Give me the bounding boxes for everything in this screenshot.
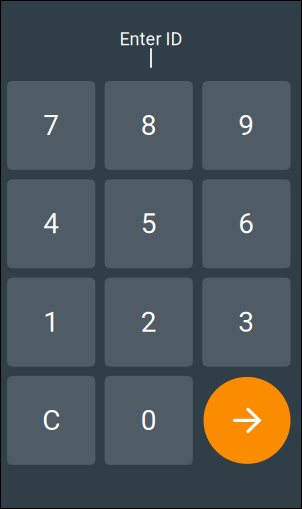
button[interactable]: 7 <box>7 81 95 170</box>
button[interactable]: 0 <box>105 376 193 465</box>
staticText: 7 <box>43 109 59 142</box>
button[interactable]: 1 <box>7 278 95 367</box>
button[interactable]: 5 <box>105 179 193 268</box>
button[interactable]: 6 <box>202 179 290 268</box>
button[interactable]: Submit <box>202 376 290 465</box>
button[interactable]: 4 <box>7 179 95 268</box>
staticText: 8 <box>141 109 157 142</box>
staticText: 4 <box>43 207 59 240</box>
button[interactable]: C <box>7 376 95 465</box>
staticText: 5 <box>141 207 157 240</box>
staticText: 0 <box>141 404 157 437</box>
staticText: Enter ID <box>119 28 182 50</box>
button[interactable]: 9 <box>202 81 290 170</box>
staticText: 3 <box>238 306 254 338</box>
button[interactable]: 8 <box>105 81 193 170</box>
staticText: 9 <box>238 109 254 142</box>
staticText: 6 <box>238 207 254 240</box>
staticText: 2 <box>141 306 157 338</box>
button[interactable]: 3 <box>202 278 290 367</box>
button[interactable]: 2 <box>105 278 193 367</box>
staticText: C <box>42 404 60 437</box>
button[interactable]: Enter ID <box>7 1 295 81</box>
staticText: 1 <box>43 306 59 338</box>
